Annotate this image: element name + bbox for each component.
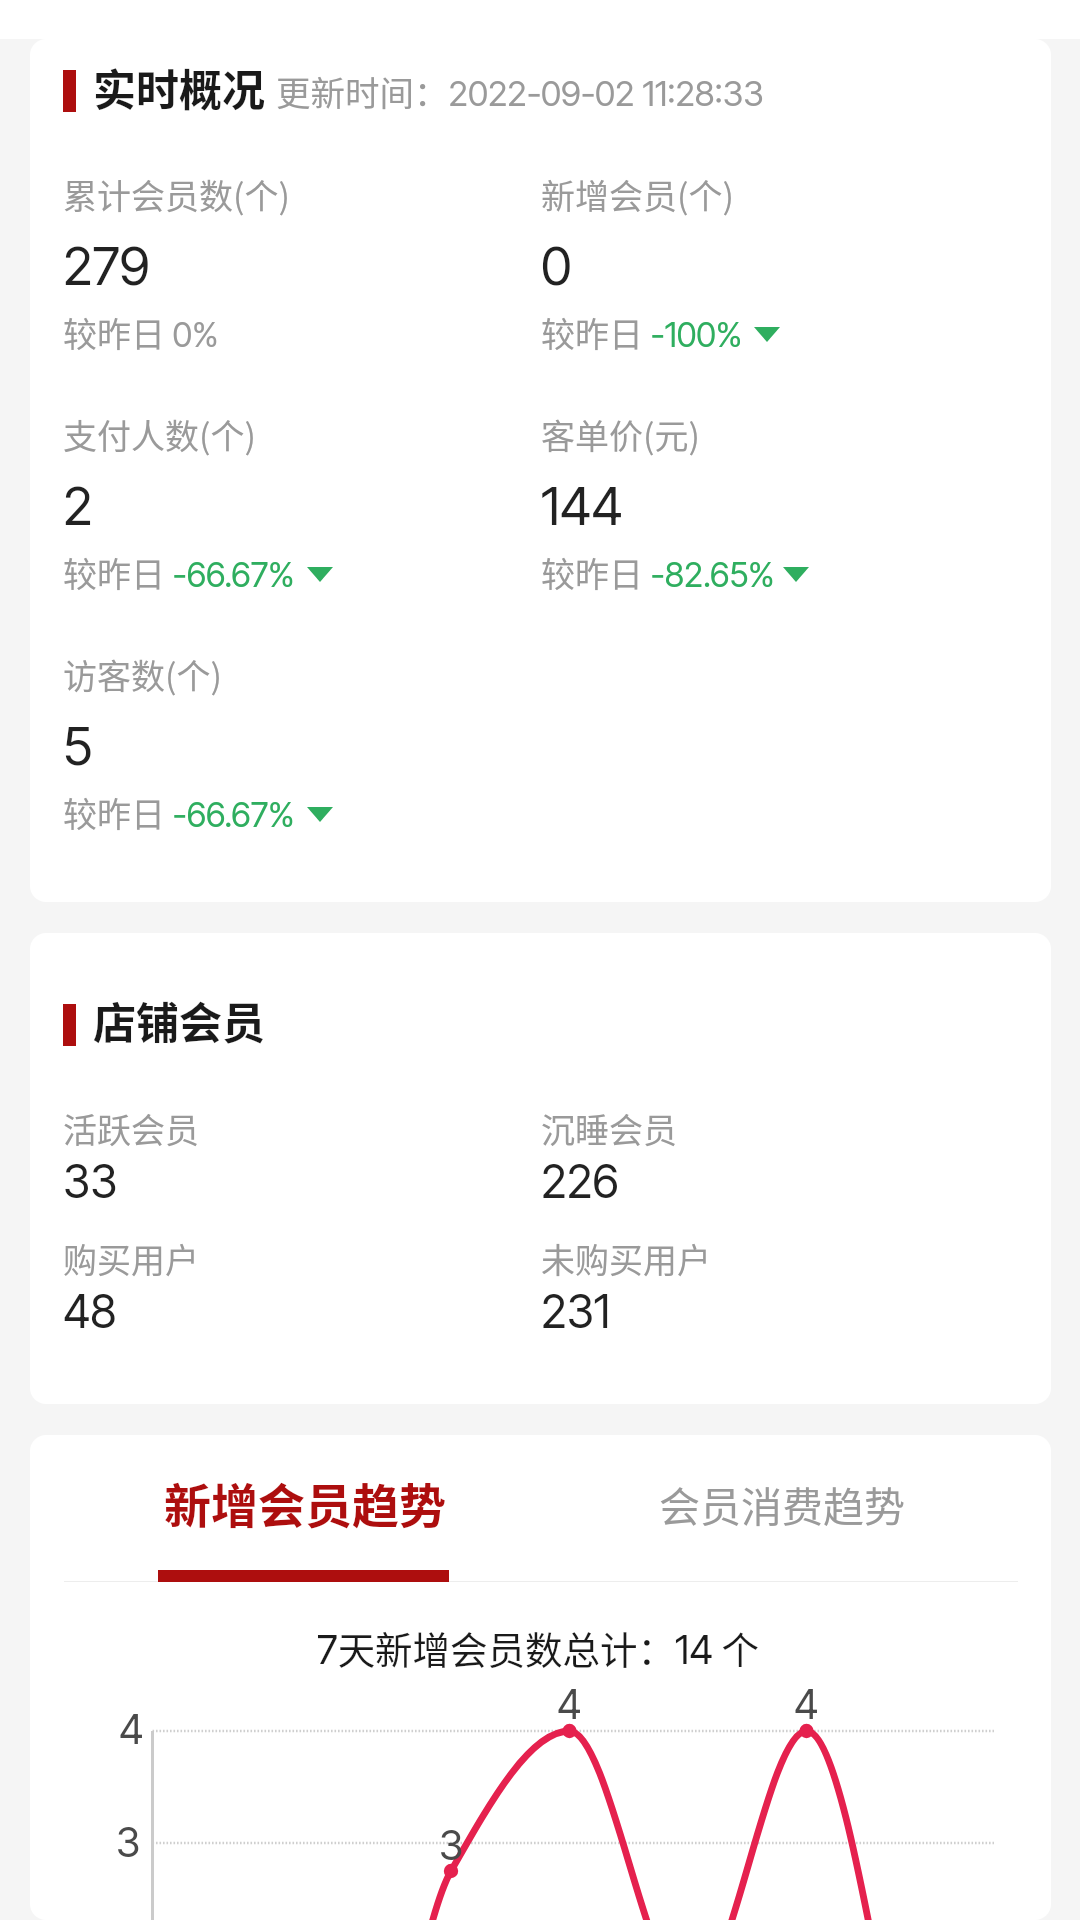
staticText: 4 (557, 1679, 582, 1729)
staticText: 3 (116, 1817, 141, 1867)
staticText: 店铺会员 (93, 989, 265, 1051)
staticText: 0 (541, 234, 572, 298)
staticText: 客单价(元) (541, 410, 700, 459)
staticText: 较昨日 -66.67% (63, 548, 295, 597)
staticText: 会员消费趋势 (659, 1474, 905, 1533)
button[interactable]: 新增会员趋势 (64, 1455, 449, 1582)
button[interactable]: 新增会员 0 较昨日 -100% (522, 155, 992, 360)
staticText: 4 (794, 1679, 819, 1729)
staticText: 未购买用户 (541, 1234, 711, 1283)
staticText: 更新时间：2022-09-02 11:28:33 (276, 66, 764, 116)
staticText: 实时概况 (93, 56, 265, 118)
staticText: 新增会员(个) (541, 170, 734, 219)
staticText: 231 (541, 1283, 611, 1339)
staticText: 48 (63, 1283, 117, 1339)
staticText: 7天新增会员数总计：14 个 (317, 1620, 760, 1674)
staticText: 购买用户 (63, 1234, 199, 1283)
staticText: 活跃会员 (63, 1104, 199, 1153)
staticText: 3 (439, 1820, 464, 1870)
button[interactable]: 客单价 144 较昨日 -82.65% (522, 395, 992, 600)
staticText: 沉睡会员 (541, 1104, 677, 1153)
staticText: 2 (63, 474, 93, 538)
staticText: 支付人数(个) (63, 410, 256, 459)
staticText: 累计会员数(个) (63, 170, 290, 219)
staticText: 33 (63, 1153, 118, 1209)
staticText: 144 (541, 474, 623, 538)
staticText: 访客数(个) (63, 650, 222, 699)
staticText: 279 (63, 234, 150, 298)
staticText: 较昨日 -82.65% (541, 548, 775, 597)
staticText: 新增会员趋势 (164, 1468, 446, 1536)
staticText: 较昨日 -100% (541, 308, 743, 357)
staticText: 5 (63, 714, 93, 778)
button[interactable]: 支付人数 2 较昨日 -66.67% (45, 395, 515, 600)
staticText: 226 (541, 1153, 619, 1209)
button[interactable]: 访客数 5 较昨日 -66.67% (45, 635, 515, 840)
button[interactable]: 累计会员数 279 较昨日 0% (45, 155, 515, 360)
staticText: 4 (119, 1704, 144, 1754)
staticText: 较昨日 -66.67% (63, 788, 295, 837)
staticText: 较昨日 0% (63, 308, 219, 357)
button[interactable]: 会员消费趋势 (600, 1455, 960, 1582)
